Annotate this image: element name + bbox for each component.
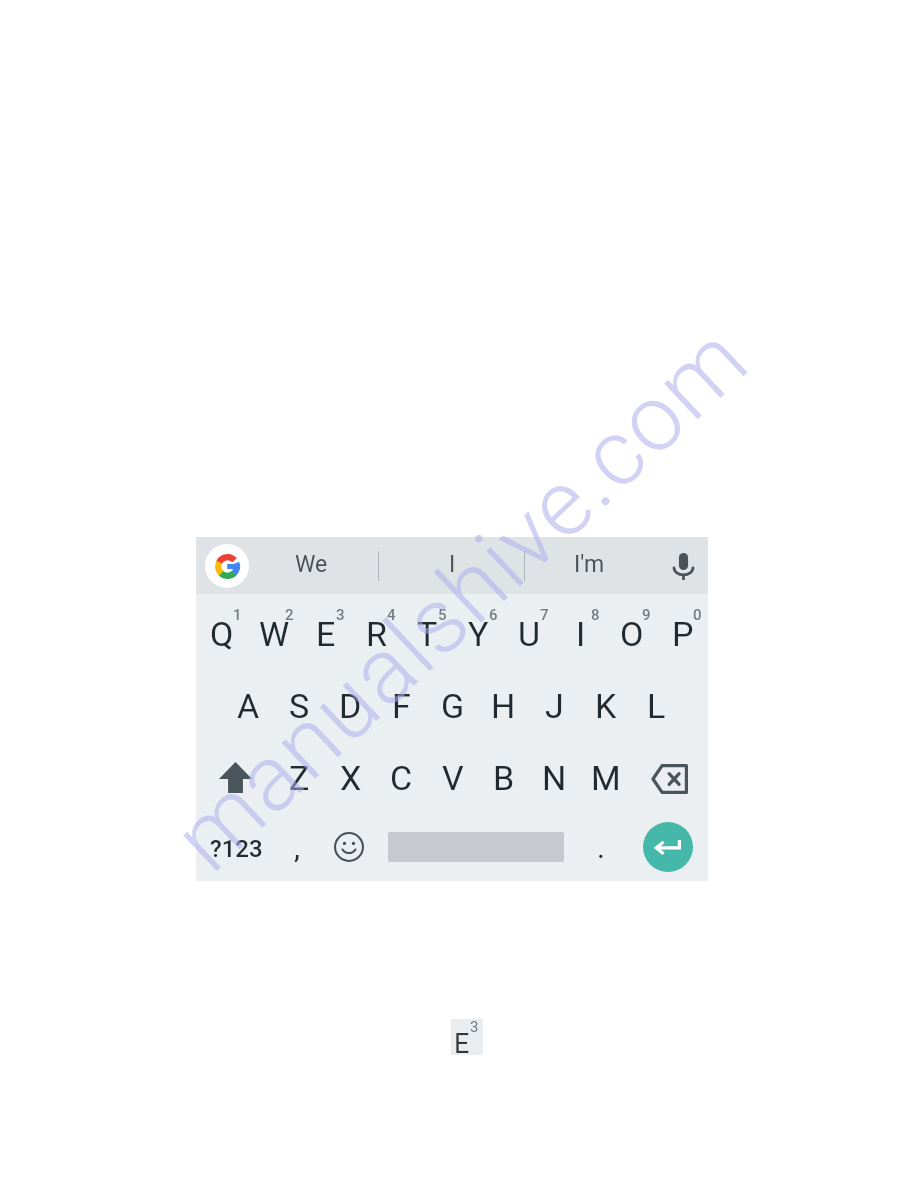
staticText: G [441, 686, 465, 726]
button[interactable]: I [382, 537, 522, 594]
button[interactable]: I'm [527, 537, 651, 594]
staticText: S [289, 686, 310, 726]
button[interactable]: B [478, 738, 529, 810]
staticText: 7 [540, 606, 549, 624]
staticText: Q [210, 614, 234, 654]
staticText: B [493, 758, 515, 798]
staticText: U [518, 614, 541, 654]
button[interactable]: E [300, 594, 351, 666]
button[interactable]: O [606, 594, 657, 666]
staticText: D [339, 686, 362, 726]
staticText: , [294, 830, 300, 865]
staticText: 9 [642, 606, 651, 624]
staticText: H [491, 686, 516, 726]
staticText: 4 [387, 606, 396, 624]
button[interactable]: A [223, 666, 274, 738]
button[interactable]: X [325, 738, 376, 810]
staticText: 8 [591, 606, 600, 624]
staticText: P [672, 614, 694, 654]
button[interactable]: U [504, 594, 555, 666]
button[interactable]: K [580, 666, 631, 738]
button[interactable]: Z [274, 738, 325, 810]
button[interactable]: , [274, 810, 320, 881]
button[interactable]: . [578, 810, 624, 881]
staticText: L [647, 686, 666, 726]
button[interactable]: J [529, 666, 580, 738]
staticText: M [591, 758, 621, 798]
button[interactable]: Q [196, 594, 248, 666]
button[interactable]: H [478, 666, 529, 738]
staticText: J [545, 686, 564, 726]
staticText: E [454, 1028, 470, 1060]
staticText: F [392, 686, 411, 726]
button[interactable]: D [325, 666, 376, 738]
staticText: Z [289, 758, 310, 798]
staticText: K [595, 686, 617, 726]
button[interactable]: Voice input [661, 544, 705, 588]
staticText: . [597, 830, 605, 865]
staticText: A [237, 686, 260, 726]
staticText: T [417, 614, 438, 654]
staticText: W [259, 614, 290, 654]
button[interactable]: M [580, 738, 631, 810]
staticText: R [366, 614, 387, 654]
button[interactable]: R [351, 594, 402, 666]
button[interactable]: N [529, 738, 580, 810]
staticText: 3 [336, 606, 345, 624]
button[interactable]: Enter [643, 822, 693, 872]
button[interactable]: T [402, 594, 453, 666]
staticText: 5 [438, 606, 447, 624]
button[interactable]: C [376, 738, 427, 810]
staticText: Y [468, 614, 489, 654]
staticText: 0 [693, 606, 702, 624]
staticText: I [449, 551, 456, 578]
button[interactable]: F [376, 666, 427, 738]
button[interactable]: E [451, 1019, 483, 1055]
staticText: ?123 [210, 835, 263, 863]
button[interactable]: We [248, 537, 374, 594]
button[interactable]: Shift [196, 738, 274, 810]
button[interactable]: P [657, 594, 708, 666]
button[interactable]: Backspace [631, 738, 708, 810]
button[interactable]: I [555, 594, 606, 666]
staticText: O [620, 614, 644, 654]
staticText: 6 [489, 606, 498, 624]
staticText: X [340, 758, 362, 798]
staticText: I'm [574, 551, 605, 578]
staticText: V [442, 758, 464, 798]
button[interactable]: Y [453, 594, 504, 666]
staticText: N [542, 758, 567, 798]
button[interactable]: V [427, 738, 478, 810]
staticText: 1 [233, 606, 242, 624]
staticText: I [576, 614, 586, 654]
staticText: E [316, 614, 336, 654]
button[interactable]: Google [205, 544, 249, 588]
button[interactable]: W [248, 594, 300, 666]
button[interactable]: ?123 [205, 810, 267, 881]
staticText: We [295, 551, 328, 578]
button[interactable]: L [631, 666, 682, 738]
staticText: 2 [285, 606, 294, 624]
button[interactable]: G [427, 666, 478, 738]
button[interactable]: Emoji [325, 811, 373, 882]
staticText: 3 [470, 1018, 479, 1036]
button[interactable]: S [274, 666, 325, 738]
staticText: C [390, 758, 413, 798]
